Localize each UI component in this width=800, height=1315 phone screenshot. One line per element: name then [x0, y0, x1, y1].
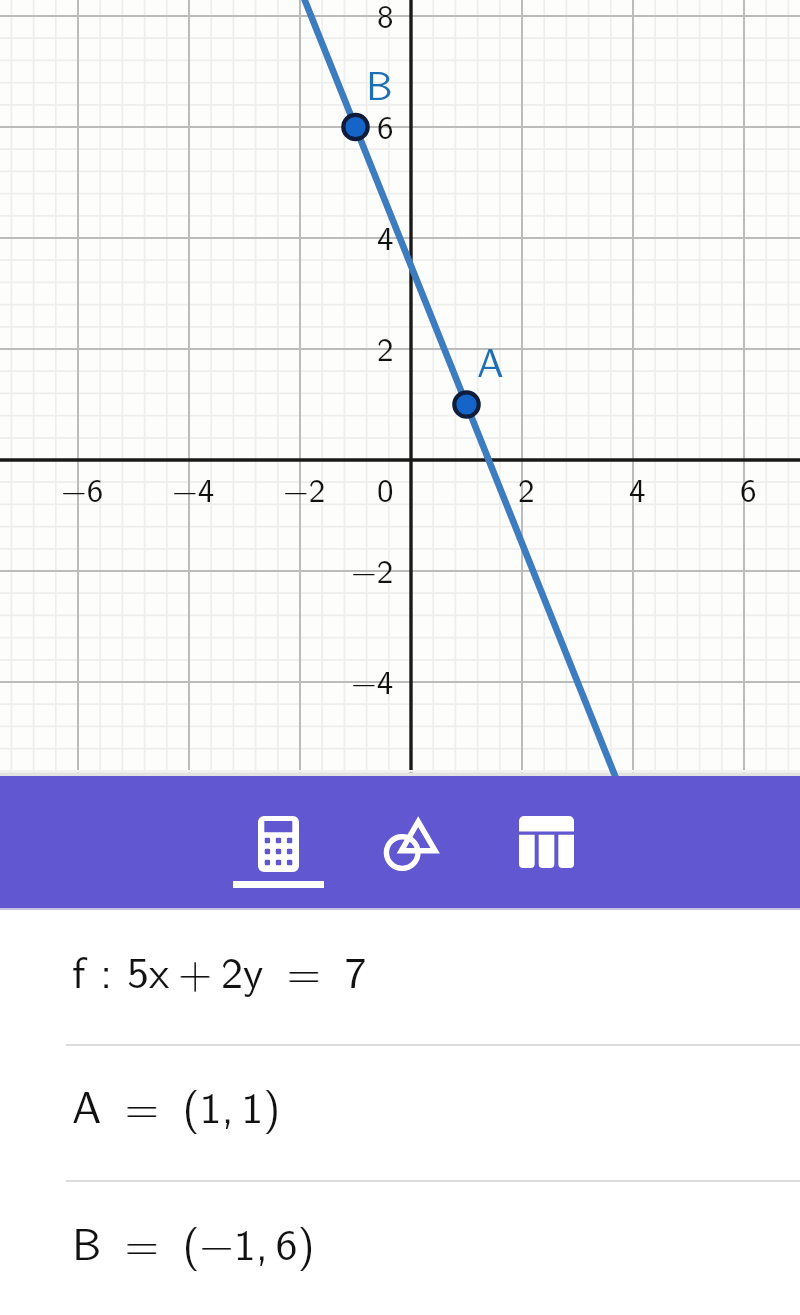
- staticText: −2: [283, 464, 326, 512]
- staticText: −4: [172, 464, 215, 512]
- button[interactable]: B = (−1, 6): [0, 1180, 800, 1315]
- staticText: 2: [518, 464, 535, 512]
- staticText: B = (−1, 6): [72, 1209, 315, 1273]
- staticText: −6: [61, 464, 104, 512]
- staticText: 6: [740, 464, 757, 512]
- staticText: 6: [377, 101, 394, 149]
- staticText: 4: [377, 212, 394, 260]
- staticText: −4: [351, 656, 394, 704]
- staticText: 8: [377, 0, 394, 38]
- button[interactable]: Table: [479, 776, 613, 908]
- button[interactable]: f : 5x + 2y = 7: [0, 908, 800, 1044]
- staticText: −2: [351, 545, 394, 593]
- staticText: 0: [377, 464, 394, 512]
- button[interactable]: A = (1, 1): [0, 1044, 800, 1180]
- staticText: 2: [377, 323, 394, 371]
- button[interactable]: Geometry: [345, 776, 479, 908]
- staticText: A: [477, 331, 504, 390]
- staticText: B: [366, 54, 393, 113]
- staticText: 4: [629, 464, 646, 512]
- staticText: f : 5x + 2y = 7: [72, 937, 367, 1001]
- button[interactable]: Calculator: [211, 776, 345, 908]
- staticText: A = (1, 1): [72, 1072, 281, 1136]
